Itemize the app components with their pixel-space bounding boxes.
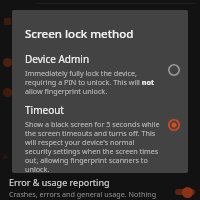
button[interactable]: Error & usage reporting — [0, 176, 200, 200]
button[interactable]: Error & usage reporting toggle — [173, 186, 197, 198]
staticText: Error & usage reporting — [9, 176, 110, 188]
staticText: A — [3, 152, 8, 162]
button[interactable]: Device Admin — [12, 52, 188, 96]
staticText: Immediately fully lock the device, requi… — [25, 68, 160, 96]
staticText: Screen lock method — [25, 26, 134, 42]
staticText: Timeout — [25, 103, 64, 117]
staticText: Device Admin — [25, 52, 90, 66]
other: Device Admin — [166, 62, 182, 78]
button[interactable]: Timeout — [12, 103, 188, 173]
staticText: Crashes, errors and general usage. Nothi… — [9, 189, 157, 200]
staticText: Show a black screen for 5 seconds while … — [25, 119, 160, 173]
other: Timeout selected — [166, 117, 182, 133]
